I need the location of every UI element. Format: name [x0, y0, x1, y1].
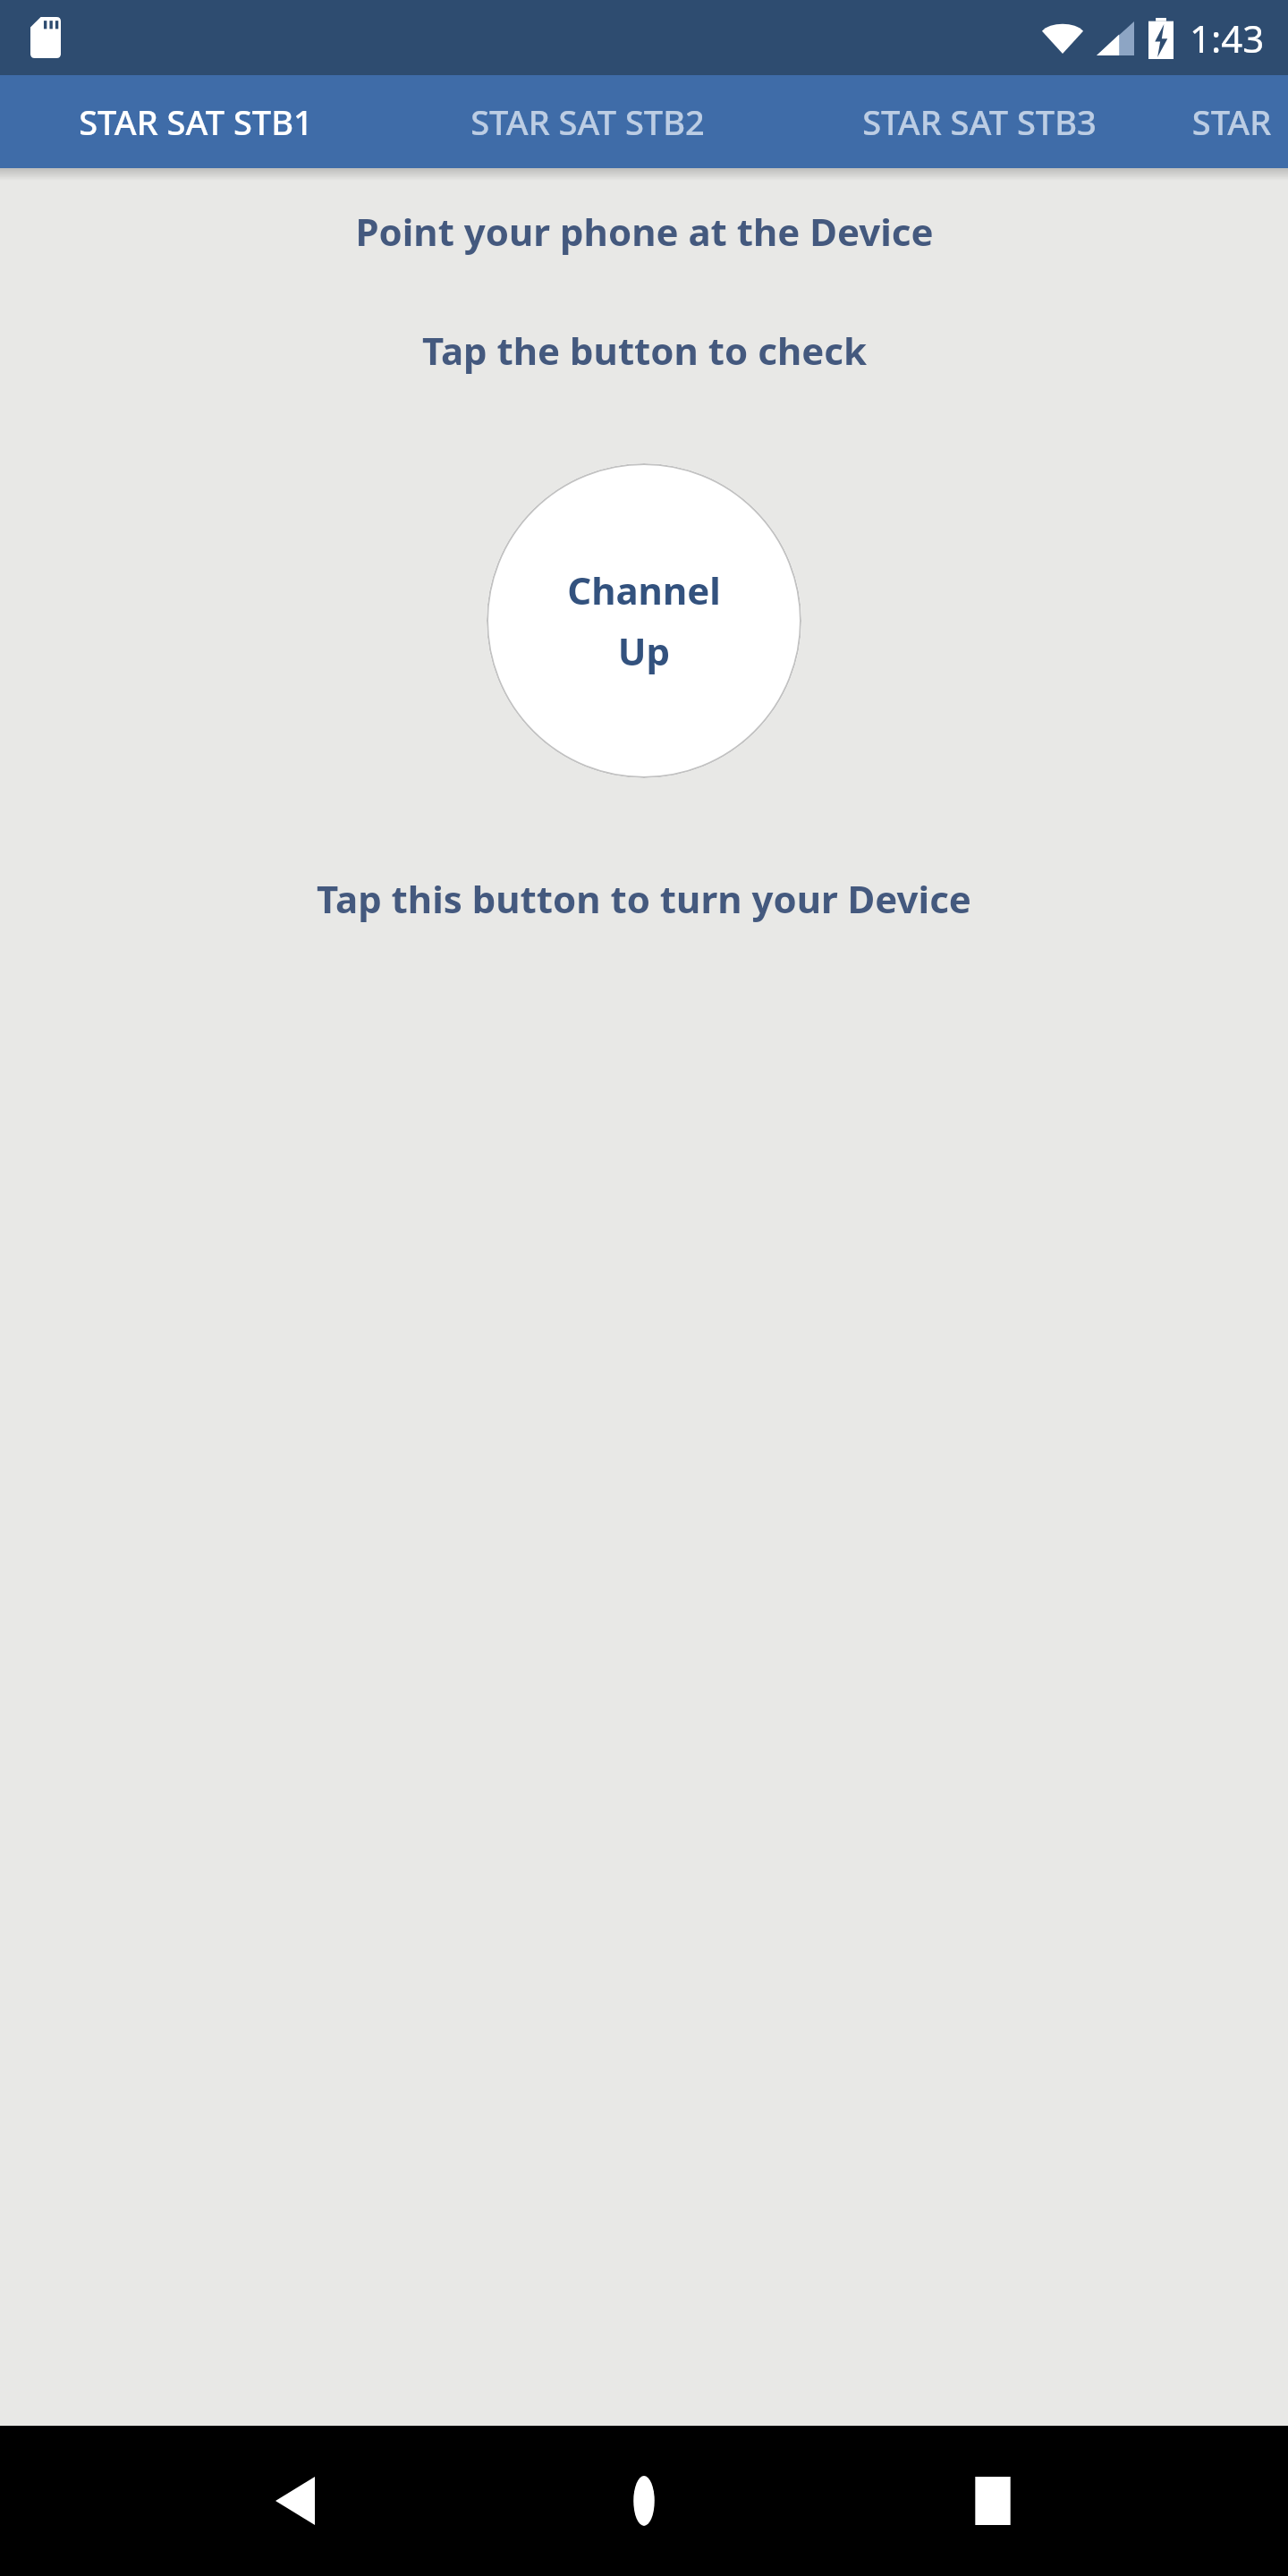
button[interactable]: Back: [241, 2447, 349, 2555]
button[interactable]: STAR SAT STB2: [392, 75, 784, 168]
button[interactable]: Recent apps: [939, 2447, 1046, 2555]
button[interactable]: Channel Up: [487, 463, 801, 778]
staticText: STAR SAT STB2: [470, 98, 705, 145]
button[interactable]: Home: [590, 2447, 698, 2555]
button[interactable]: STAR SAT STB3: [784, 75, 1175, 168]
staticText: Point your phone at the Device: [355, 206, 934, 257]
staticText: STAR SAT STB3: [862, 98, 1097, 145]
staticText: Tap this button to turn your Device: [317, 873, 971, 924]
staticText: STAR SAT STB4: [1175, 98, 1288, 145]
staticText: 1:43: [1190, 13, 1265, 64]
staticText: STAR SAT STB1: [79, 98, 313, 145]
button[interactable]: STAR SAT STB1: [0, 75, 392, 168]
button[interactable]: STAR SAT STB4: [1175, 75, 1288, 168]
staticText: Channel Up: [567, 564, 721, 677]
staticText: Tap the button to check: [422, 325, 867, 376]
